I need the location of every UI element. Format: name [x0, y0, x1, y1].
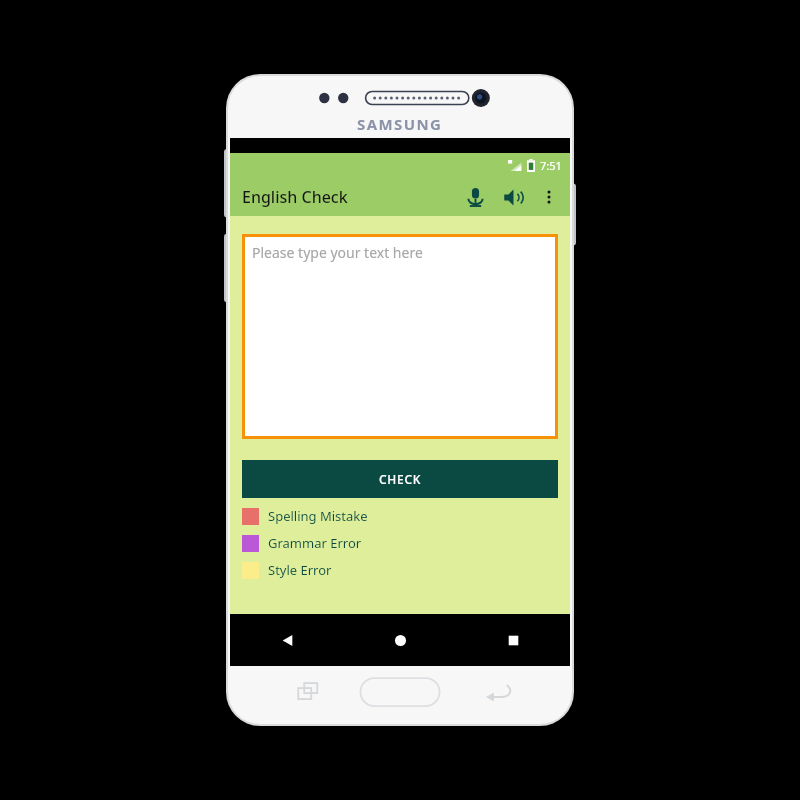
button[interactable]: Speech input — [456, 178, 494, 216]
staticText: English Check — [242, 186, 348, 208]
button[interactable]: Back — [230, 614, 344, 666]
staticText: Spelling Mistake — [268, 507, 368, 525]
staticText: Style Error — [268, 561, 332, 579]
button[interactable]: Please type your text here — [242, 234, 558, 439]
staticText: 7:51 — [540, 158, 562, 173]
button[interactable]: Home — [344, 614, 457, 666]
staticText: Grammar Error — [268, 534, 362, 552]
button[interactable]: CHECK — [242, 460, 558, 498]
button[interactable]: Recent apps — [457, 614, 570, 666]
button[interactable]: More options — [532, 180, 566, 214]
staticText: Please type your text here — [252, 243, 423, 262]
button[interactable]: Style Error — [242, 561, 558, 579]
staticText: SAMSUNG — [357, 114, 443, 134]
button[interactable]: Read aloud — [494, 178, 532, 216]
staticText: CHECK — [379, 471, 421, 487]
button[interactable]: Spelling Mistake — [242, 507, 558, 525]
button[interactable]: Grammar Error — [242, 534, 558, 552]
